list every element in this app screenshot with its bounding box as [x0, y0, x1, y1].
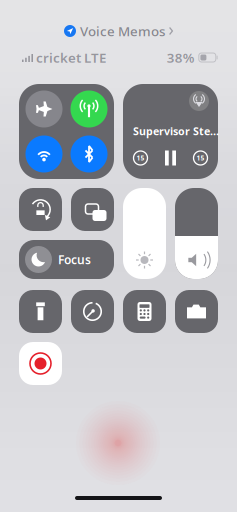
button[interactable]: Screen Recording [19, 342, 62, 385]
staticText: 38% [167, 49, 195, 66]
staticText: cricket LTE [36, 49, 106, 66]
button[interactable]: Focus [19, 240, 114, 279]
button[interactable]: Screen Mirroring [71, 188, 114, 231]
button[interactable]: AirPlay [188, 90, 210, 112]
button[interactable]: Volume [175, 188, 218, 279]
button[interactable]: Rotation Lock [19, 188, 62, 231]
button[interactable]: Camera [175, 290, 218, 333]
button[interactable]: Cellular Data [70, 90, 107, 127]
staticText: Focus [58, 251, 91, 267]
button[interactable]: Back 15 seconds [129, 147, 151, 169]
staticText: 15 [136, 154, 144, 162]
button[interactable]: Airplane Mode [25, 90, 62, 127]
button[interactable]: Flashlight [19, 290, 62, 333]
button[interactable]: Pause [159, 147, 181, 169]
button[interactable]: Brightness [123, 188, 166, 279]
button[interactable]: Wi-Fi [25, 135, 62, 172]
staticText: Voice Memos [80, 22, 165, 40]
button[interactable]: Forward 15 seconds [189, 147, 211, 169]
staticText: 15 [196, 154, 204, 162]
button[interactable]: Timer [71, 290, 114, 333]
button[interactable]: Calculator [123, 290, 166, 333]
button[interactable]: Bluetooth [70, 135, 107, 172]
staticText: Supervisor Ste… [133, 124, 219, 138]
